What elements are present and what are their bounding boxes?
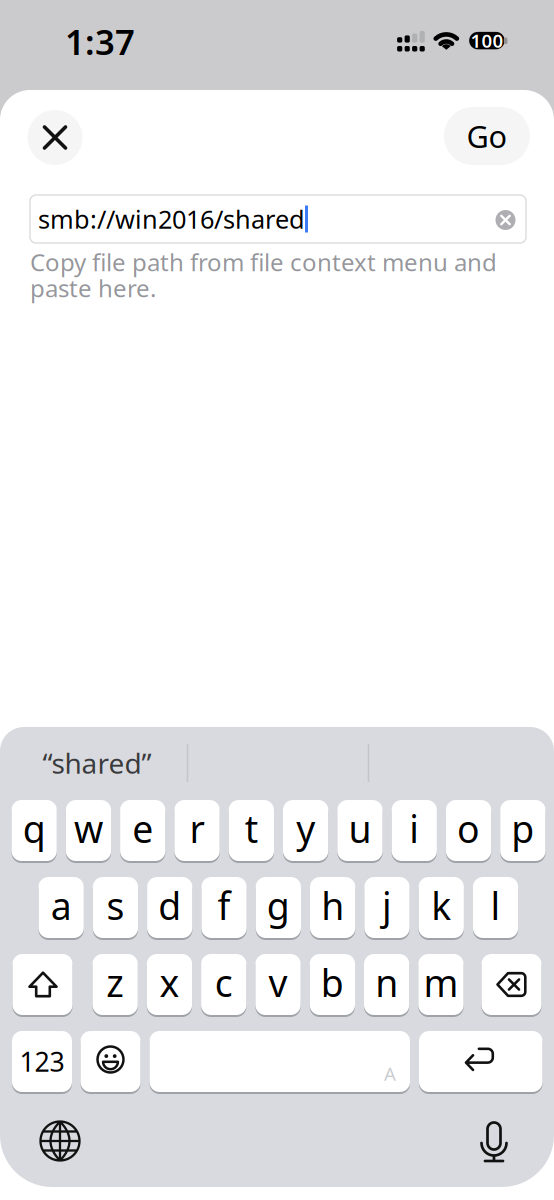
staticText: v [268, 958, 287, 1007]
button[interactable]: c [201, 951, 246, 1017]
staticText: “shared” [42, 744, 151, 782]
staticText: i [409, 804, 419, 853]
staticText: Copy file path from file context menu an… [30, 246, 497, 278]
staticText: e [132, 804, 153, 853]
button[interactable] [495, 210, 515, 230]
button[interactable]: smb://win2016/shared [30, 195, 526, 243]
staticText: w [74, 804, 103, 853]
button[interactable]: d [147, 874, 192, 940]
button[interactable]: f [201, 874, 247, 940]
staticText: n [375, 958, 398, 1007]
staticText: b [321, 958, 344, 1007]
staticText: 123 [19, 1044, 64, 1079]
staticText: z [106, 958, 124, 1007]
staticText: y [296, 804, 315, 853]
button[interactable]: y [283, 797, 328, 863]
staticText: x [159, 958, 179, 1007]
staticText: paste here. [30, 272, 156, 304]
button[interactable]: Go [444, 107, 530, 165]
button[interactable]: 123 [12, 1028, 72, 1094]
staticText: smb://win2016/shared [38, 202, 305, 236]
staticText: m [423, 958, 458, 1007]
button[interactable]: i [392, 797, 437, 863]
button[interactable]: q [11, 797, 57, 863]
button[interactable]: u [337, 797, 383, 863]
staticText: a [51, 881, 72, 930]
button[interactable]: p [500, 797, 545, 863]
staticText: s [106, 881, 124, 930]
button[interactable]: j [364, 874, 410, 940]
staticText: q [23, 804, 46, 853]
button[interactable]: g [256, 874, 301, 940]
button[interactable] [470, 1115, 518, 1163]
button[interactable]: w [66, 797, 111, 863]
button[interactable]: a [38, 874, 84, 940]
staticText: 1:37 [65, 18, 135, 64]
button[interactable] [27, 110, 82, 165]
button[interactable]: l [473, 874, 518, 940]
staticText: k [431, 881, 451, 930]
staticText: f [217, 881, 230, 930]
button[interactable]: e [120, 797, 165, 863]
staticText: u [348, 804, 371, 853]
button[interactable] [12, 951, 72, 1017]
staticText: Go [466, 116, 507, 156]
staticText: j [382, 881, 392, 930]
staticText: r [189, 804, 204, 853]
button[interactable] [80, 1028, 140, 1094]
button[interactable]: A [149, 1028, 410, 1094]
button[interactable] [419, 1028, 542, 1094]
staticText: g [267, 881, 290, 930]
button[interactable]: o [446, 797, 491, 863]
button[interactable] [481, 951, 541, 1017]
staticText: d [158, 881, 181, 930]
button[interactable]: m [418, 951, 464, 1017]
button[interactable]: k [419, 874, 464, 940]
button[interactable]: z [92, 951, 138, 1017]
button[interactable]: h [310, 874, 355, 940]
staticText: t [245, 804, 258, 853]
staticText: A [384, 1061, 396, 1086]
button[interactable]: “shared” [7, 738, 187, 788]
staticText: l [490, 881, 500, 930]
staticText: p [511, 804, 534, 853]
staticText: o [457, 804, 480, 853]
button[interactable] [36, 1117, 84, 1165]
staticText: 100 [470, 28, 503, 53]
button[interactable]: x [147, 951, 192, 1017]
staticText: c [215, 958, 233, 1007]
button[interactable]: v [255, 951, 301, 1017]
button[interactable]: n [364, 951, 409, 1017]
button[interactable]: r [174, 797, 220, 863]
button[interactable]: t [229, 797, 274, 863]
staticText: h [321, 881, 344, 930]
button[interactable]: s [93, 874, 138, 940]
button[interactable]: b [310, 951, 355, 1017]
